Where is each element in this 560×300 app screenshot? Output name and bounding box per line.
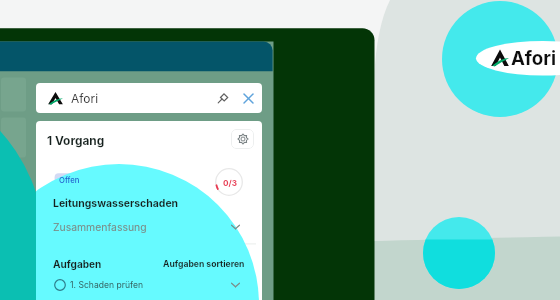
staticText: Aufgaben [53, 258, 102, 270]
staticText: 1 Vorgang [47, 133, 105, 147]
button[interactable]: Settings [231, 129, 254, 149]
staticText: Afori [71, 91, 99, 105]
button[interactable]: Afori [36, 83, 262, 113]
staticText: Zusammenfassung [53, 221, 147, 234]
staticText: Afori [511, 47, 557, 70]
button[interactable]: Offen [59, 176, 80, 185]
staticText: Leitungswasserschaden [53, 197, 179, 210]
button[interactable]: Zusammenfassung [53, 217, 240, 237]
button[interactable]: 1. Schaden prüfen [54, 275, 240, 295]
button[interactable]: Afori logo [476, 41, 560, 76]
staticText: 1. Schaden prüfen [70, 280, 144, 290]
button[interactable]: Pin tab [214, 89, 232, 107]
staticText: 0/3 [223, 178, 237, 188]
button[interactable]: Aufgaben sortieren [163, 259, 245, 269]
button[interactable]: Close tab [239, 89, 257, 107]
